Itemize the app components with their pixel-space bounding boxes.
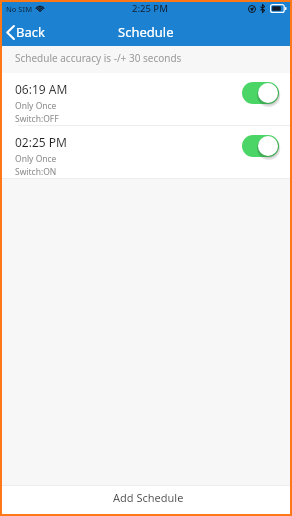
staticText: 2:25 PM: [132, 2, 168, 15]
button[interactable]: Add Schedule: [2, 486, 290, 514]
staticText: Switch:ON: [15, 166, 57, 178]
staticText: 02:25 PM: [15, 134, 67, 150]
staticText: Switch:OFF: [15, 113, 59, 125]
button[interactable]: Back: [2, 20, 50, 44]
staticText: Schedule: [118, 23, 174, 41]
staticText: No SIM: [6, 4, 33, 14]
staticText: Add Schedule: [113, 490, 184, 505]
staticText: Only Once: [15, 153, 57, 165]
button[interactable]: 06:19 AM: [2, 73, 290, 126]
button[interactable]: Toggle schedule: [242, 135, 279, 157]
button[interactable]: 02:25 PM: [2, 126, 290, 179]
staticText: Only Once: [15, 100, 57, 112]
staticText: Schedule accuracy is -/+ 30 seconds: [15, 51, 182, 65]
staticText: 06:19 AM: [15, 81, 68, 97]
button[interactable]: Toggle schedule: [242, 82, 279, 104]
staticText: Back: [16, 23, 45, 41]
